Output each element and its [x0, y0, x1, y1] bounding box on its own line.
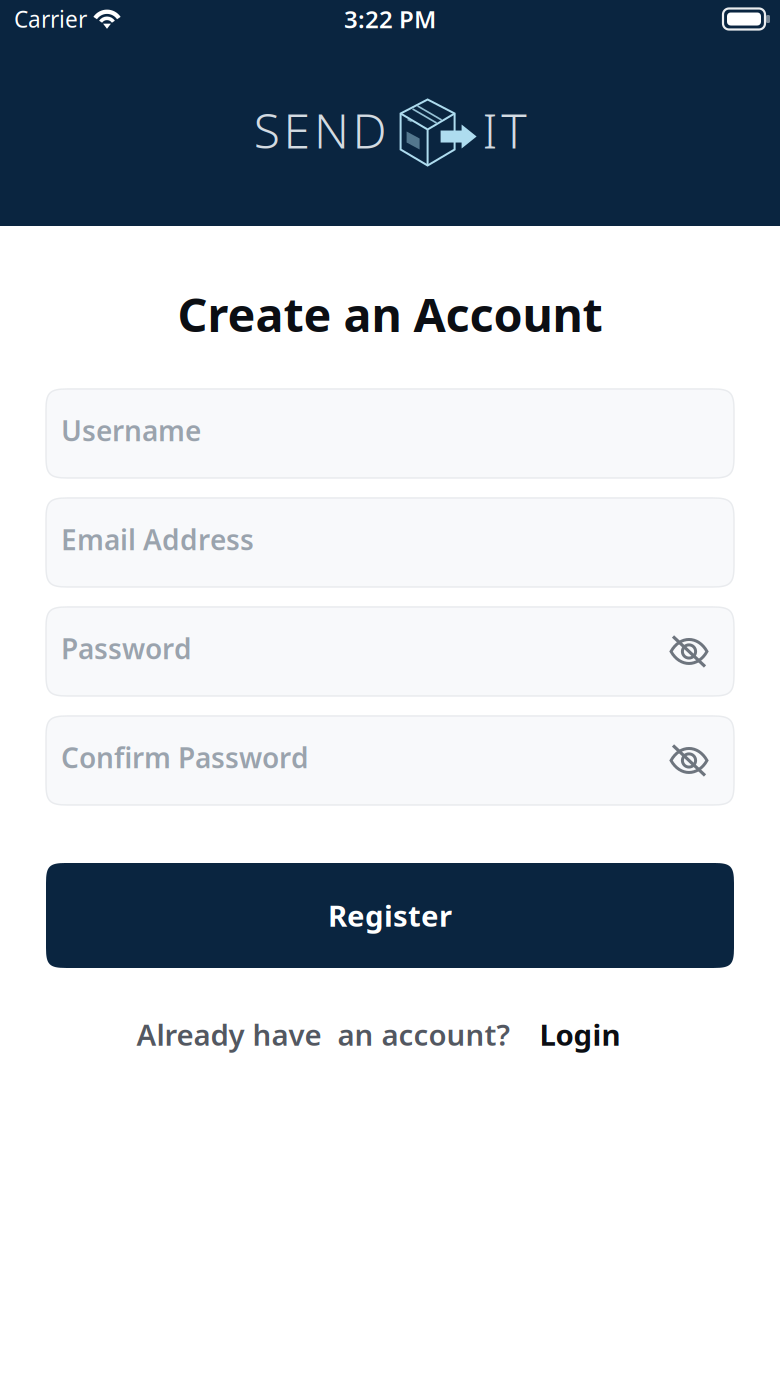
button[interactable]: Email Address	[46, 498, 734, 587]
staticText: SEND	[254, 98, 387, 162]
staticText: Username	[61, 412, 201, 449]
staticText: Register	[328, 896, 452, 935]
button[interactable]: Confirm Password	[46, 716, 734, 805]
staticText: Already have an account?	[136, 1015, 510, 1054]
button[interactable]: Login	[510, 1015, 620, 1054]
button[interactable]: Show Confirm Password	[669, 743, 709, 777]
staticText: Create an Account	[177, 283, 602, 345]
button[interactable]: Show Password	[669, 634, 709, 668]
staticText: Password	[61, 630, 192, 667]
staticText: 3:22 PM	[344, 3, 436, 35]
staticText: Confirm Password	[61, 739, 309, 776]
staticText: Carrier	[14, 4, 87, 34]
button[interactable]: Register	[46, 863, 734, 968]
staticText: Login	[539, 1015, 620, 1054]
button[interactable]: Username	[46, 389, 734, 478]
staticText: Email Address	[61, 521, 254, 558]
staticText: IT	[483, 98, 526, 162]
button[interactable]: Password	[46, 607, 734, 696]
